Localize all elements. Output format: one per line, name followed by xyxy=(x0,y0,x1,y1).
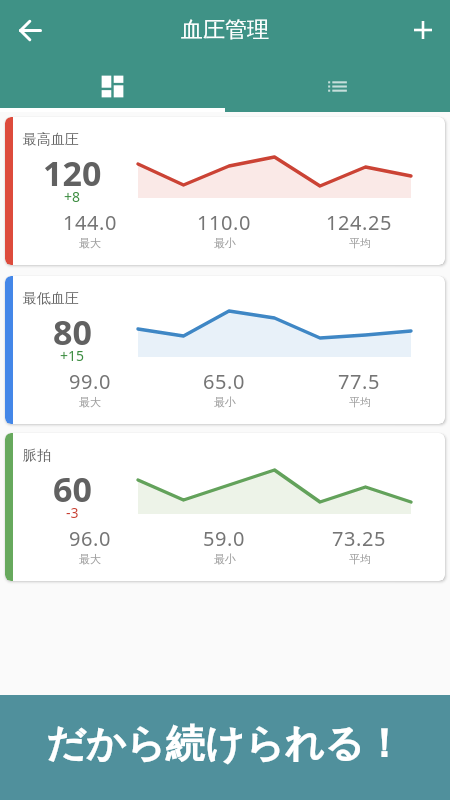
staticText: 平均 xyxy=(349,236,371,250)
staticText: 99.0 xyxy=(69,368,112,395)
staticText: 平均 xyxy=(349,395,371,409)
staticText: 最大 xyxy=(79,236,101,250)
button[interactable]: 脈拍 xyxy=(5,433,445,581)
button[interactable] xyxy=(0,60,225,112)
button[interactable] xyxy=(225,60,450,112)
staticText: 最小 xyxy=(214,552,236,566)
staticText: 60 xyxy=(53,466,92,512)
staticText: +8 xyxy=(64,187,81,206)
staticText: 最大 xyxy=(79,395,101,409)
staticText: だから続けられる！ xyxy=(46,719,404,768)
button[interactable]: だから続けられる！ xyxy=(0,695,450,800)
staticText: 77.5 xyxy=(338,368,381,395)
staticText: 最小 xyxy=(214,236,236,250)
button[interactable]: 最低血圧 xyxy=(5,276,445,424)
staticText: 73.25 xyxy=(332,525,387,552)
staticText: 血圧管理 xyxy=(181,16,269,44)
staticText: 80 xyxy=(53,309,92,355)
staticText: 最大 xyxy=(79,552,101,566)
staticText: 144.0 xyxy=(63,209,118,236)
staticText: 110.0 xyxy=(197,209,252,236)
staticText: 最小 xyxy=(214,395,236,409)
staticText: 最高血圧 xyxy=(23,131,79,149)
staticText: 最低血圧 xyxy=(23,290,79,308)
staticText: 124.25 xyxy=(326,209,393,236)
staticText: 65.0 xyxy=(203,368,246,395)
button[interactable]: 最高血圧 xyxy=(5,117,445,265)
staticText: 120 xyxy=(43,150,102,196)
staticText: 平均 xyxy=(349,552,371,566)
staticText: 59.0 xyxy=(203,525,246,552)
button[interactable] xyxy=(409,16,437,44)
button[interactable] xyxy=(16,16,44,44)
staticText: +15 xyxy=(60,346,85,365)
staticText: 脈拍 xyxy=(23,447,51,465)
staticText: -3 xyxy=(66,503,79,522)
staticText: 96.0 xyxy=(69,525,112,552)
